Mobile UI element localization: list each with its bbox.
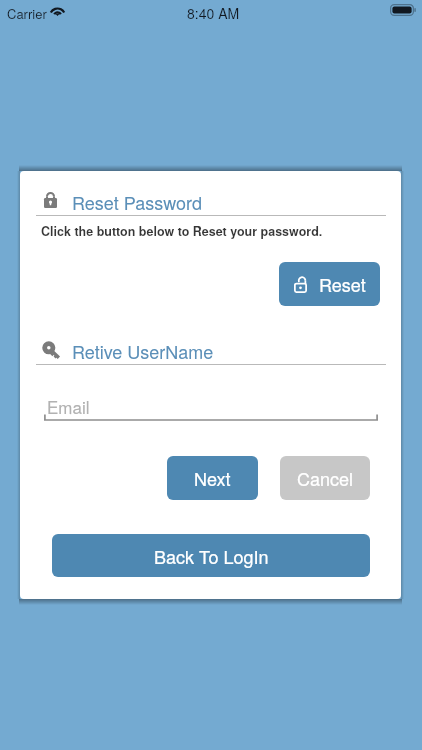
staticText: Retive UserName bbox=[72, 338, 214, 364]
button[interactable]: Next bbox=[167, 456, 258, 500]
button[interactable]: Cancel bbox=[280, 456, 370, 500]
button[interactable]: Back To LogIn bbox=[52, 534, 370, 577]
staticText: Next bbox=[194, 465, 231, 491]
staticText: Back To LogIn bbox=[154, 543, 269, 569]
staticText: Reset bbox=[319, 271, 366, 297]
staticText: Cancel bbox=[297, 465, 354, 491]
staticText: Carrier bbox=[7, 4, 47, 23]
staticText: Click the button below to Reset your pas… bbox=[41, 222, 323, 240]
staticText: Email bbox=[47, 394, 90, 418]
staticText: 8:40 AM bbox=[187, 3, 240, 23]
staticText: Reset Password bbox=[72, 189, 202, 215]
button[interactable]: Reset bbox=[279, 262, 380, 306]
